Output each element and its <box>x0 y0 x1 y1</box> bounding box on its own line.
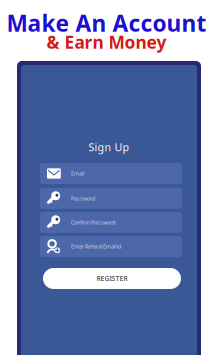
staticText: Confirm Password <box>71 219 115 226</box>
staticText: Enter Referal Email id <box>71 243 121 250</box>
button[interactable]: Confirm Password <box>40 212 182 233</box>
button[interactable]: Password <box>40 188 182 209</box>
staticText: REGISTER <box>96 274 127 283</box>
staticText: & Earn Money <box>46 30 166 53</box>
button[interactable]: REGISTER <box>43 268 181 289</box>
button[interactable]: Enter Referal Email id <box>40 236 182 257</box>
staticText: Make An Account <box>6 8 206 38</box>
staticText: Email <box>71 170 84 177</box>
staticText: Sign Up <box>88 140 129 154</box>
button[interactable]: Email <box>40 163 182 184</box>
staticText: Password <box>71 195 95 202</box>
